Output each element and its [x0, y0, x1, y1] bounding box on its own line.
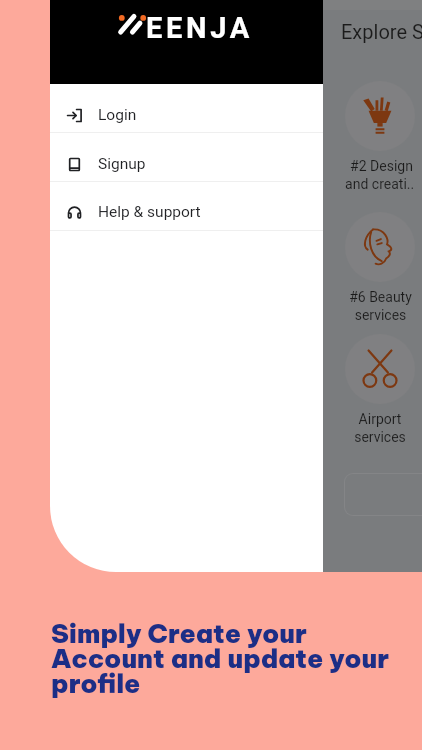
staticText: Login: [98, 106, 137, 124]
button[interactable]: #6 Beauty services: [345, 212, 415, 324]
button[interactable]: Login: [50, 84, 323, 133]
button[interactable]: #2 Design and creati...: [345, 81, 415, 193]
staticText: Simply Create your Account and update yo…: [51, 617, 401, 699]
staticText: EENJA: [146, 11, 254, 45]
staticText: Help & support: [98, 203, 201, 221]
button[interactable]: Signup: [50, 133, 323, 182]
staticText: Explore Services: [341, 20, 422, 43]
staticText: Airport services: [354, 411, 406, 446]
staticText: #6 Beauty services: [349, 289, 412, 324]
button[interactable]: Airport services: [345, 334, 415, 446]
staticText: #2 Design and creati...: [345, 158, 415, 193]
button[interactable]: Help & support: [50, 181, 323, 230]
staticText: Signup: [98, 155, 146, 173]
